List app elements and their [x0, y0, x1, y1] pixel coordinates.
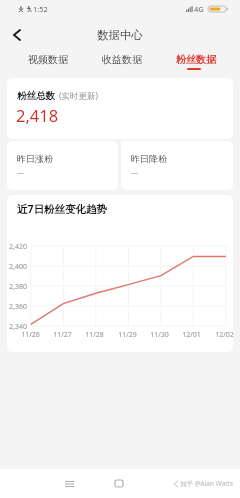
- staticText: 12/02: [215, 330, 234, 340]
- button[interactable]: 粉丝数据: [159, 48, 233, 73]
- staticText: 粉丝数据: [176, 53, 216, 66]
- staticText: 近7日粉丝变化趋势: [17, 202, 108, 216]
- staticText: 2,360: [9, 302, 27, 312]
- staticText: 2,420: [9, 242, 27, 252]
- staticText: 昨日涨粉: [17, 153, 53, 164]
- staticText: 2,418: [16, 104, 59, 126]
- staticText: 视频数据: [28, 53, 68, 66]
- staticText: 11/26: [21, 330, 40, 340]
- staticText: 11/28: [85, 330, 104, 340]
- staticText: 12/01: [182, 330, 201, 340]
- button[interactable]: 视频数据: [10, 48, 85, 73]
- button[interactable]: 粉丝总数: [7, 78, 233, 139]
- staticText: (实时更新): [59, 90, 99, 102]
- staticText: 昨日降粉: [131, 153, 167, 164]
- staticText: 11/27: [53, 330, 72, 340]
- button[interactable]: 昨日涨粉: [7, 141, 118, 190]
- staticText: 4G: [194, 4, 204, 14]
- button[interactable]: Home: [105, 470, 132, 497]
- button[interactable]: Recent apps: [56, 470, 83, 497]
- staticText: 知乎 @Alan Watts: [180, 479, 234, 488]
- button[interactable]: 昨日降粉: [121, 141, 233, 190]
- staticText: 11/29: [118, 330, 137, 340]
- button[interactable]: 收益数据: [85, 48, 159, 73]
- staticText: 2,400: [9, 262, 27, 272]
- staticText: 粉丝总数: [17, 90, 55, 102]
- staticText: 2,340: [9, 322, 27, 332]
- staticText: 数据中心: [97, 28, 143, 42]
- staticText: —: [131, 168, 138, 178]
- staticText: 11/30: [150, 330, 169, 340]
- staticText: —: [17, 168, 24, 178]
- button[interactable]: Back: [2, 20, 32, 50]
- staticText: 2,380: [9, 282, 27, 292]
- staticText: 1:52: [33, 4, 48, 14]
- staticText: 收益数据: [102, 53, 142, 66]
